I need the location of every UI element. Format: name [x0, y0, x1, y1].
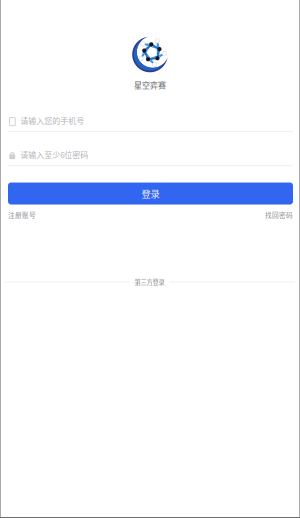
staticText: 星空弈赛: [134, 79, 166, 91]
staticText: 找回密码: [265, 210, 293, 220]
button[interactable]: 注册账号: [8, 210, 36, 220]
staticText: 第三方登录: [134, 277, 164, 287]
button[interactable]: 找回密码: [8, 210, 293, 220]
staticText: 注册账号: [8, 210, 36, 220]
staticText: 请输入您的手机号: [20, 115, 84, 126]
button[interactable]: 登录: [8, 182, 293, 204]
staticText: 登录: [141, 187, 159, 200]
staticText: 请输入至少6位密码: [20, 149, 88, 160]
